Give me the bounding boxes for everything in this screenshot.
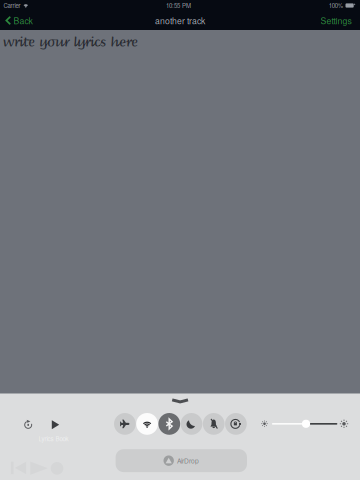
staticText: another track — [155, 14, 205, 27]
button[interactable]: AirDrop — [116, 449, 247, 472]
button[interactable]: Play — [52, 420, 59, 429]
staticText: Lyrics Book — [39, 434, 69, 443]
staticText: AirDrop — [177, 456, 199, 465]
staticText: 10:55 PM — [166, 1, 191, 10]
staticText: 100% — [329, 1, 343, 10]
button[interactable]: Airplane Mode — [114, 413, 136, 435]
button[interactable]: Settings — [317, 12, 354, 29]
button[interactable]: Back — [2, 12, 36, 29]
button[interactable]: Wi-Fi — [136, 413, 158, 435]
staticText: Settings — [320, 14, 351, 27]
button[interactable]: Bluetooth — [158, 413, 180, 435]
button[interactable]: Mute — [203, 413, 225, 435]
staticText: Carrier — [3, 1, 20, 10]
button[interactable]: Rotation Lock — [225, 413, 247, 435]
button[interactable]: Skip Back 15 Seconds — [24, 420, 33, 429]
staticText: Back — [14, 14, 33, 27]
button[interactable]: Do Not Disturb — [181, 413, 202, 435]
staticText: write your lyrics here — [3, 30, 138, 51]
